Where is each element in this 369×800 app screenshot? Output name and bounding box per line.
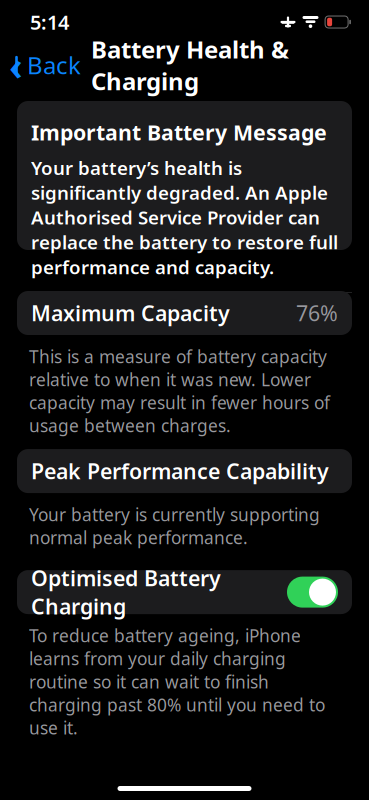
staticText: Important Battery Message: [31, 118, 327, 146]
staticText: More about service options...: [31, 304, 317, 330]
staticText: Your battery is currently supporting nor…: [29, 503, 320, 549]
staticText: Peak Performance Capability: [31, 457, 329, 485]
staticText: Battery Health & Charging: [91, 33, 289, 97]
staticText: To reduce battery ageing, iPhone learns …: [29, 624, 325, 739]
button[interactable]: ‹: [0, 43, 85, 87]
staticText: Optimised Battery Charging: [31, 564, 221, 620]
staticText: 76%: [296, 299, 338, 327]
button[interactable]: More about service options...: [31, 293, 338, 341]
staticText: This is a measure of battery capacity re…: [29, 345, 330, 437]
button[interactable]: Maximum Capacity: [17, 291, 352, 335]
staticText: Back: [27, 49, 81, 81]
button[interactable]: Optimised Battery Charging: [17, 570, 352, 614]
staticText: Your battery’s health is significantly d…: [31, 155, 338, 279]
button[interactable]: Peak Performance Capability: [17, 449, 352, 493]
staticText: 5:14: [30, 9, 69, 35]
staticText: ‹: [9, 38, 23, 91]
staticText: Maximum Capacity: [31, 299, 230, 327]
